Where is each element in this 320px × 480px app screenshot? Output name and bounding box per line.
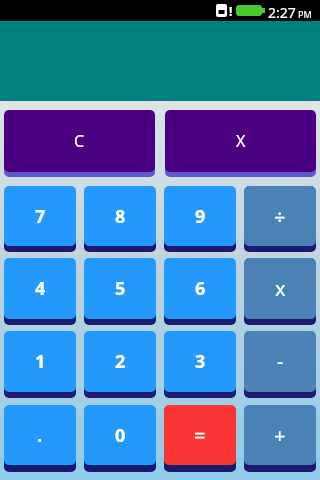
staticText: X <box>236 130 246 152</box>
staticText: + <box>274 422 286 449</box>
staticText: 2 <box>115 349 126 374</box>
staticText: 1 <box>35 349 46 374</box>
staticText: 0 <box>115 423 126 448</box>
staticText: = <box>194 422 206 449</box>
staticText: 9 <box>195 204 206 229</box>
staticText: ÷ <box>274 203 286 230</box>
staticText: ! <box>229 3 233 19</box>
staticText: 5 <box>115 276 126 301</box>
staticText: C <box>74 130 85 152</box>
staticText: 2:27 <box>268 3 296 22</box>
staticText: 7 <box>35 204 46 229</box>
staticText: - <box>277 348 284 375</box>
staticText: 4 <box>35 276 46 301</box>
staticText: . <box>37 423 43 448</box>
staticText: 6 <box>195 276 206 301</box>
staticText: 8 <box>115 204 126 229</box>
staticText: x <box>275 275 286 302</box>
staticText: PM <box>298 8 312 20</box>
staticText: 3 <box>195 349 206 374</box>
